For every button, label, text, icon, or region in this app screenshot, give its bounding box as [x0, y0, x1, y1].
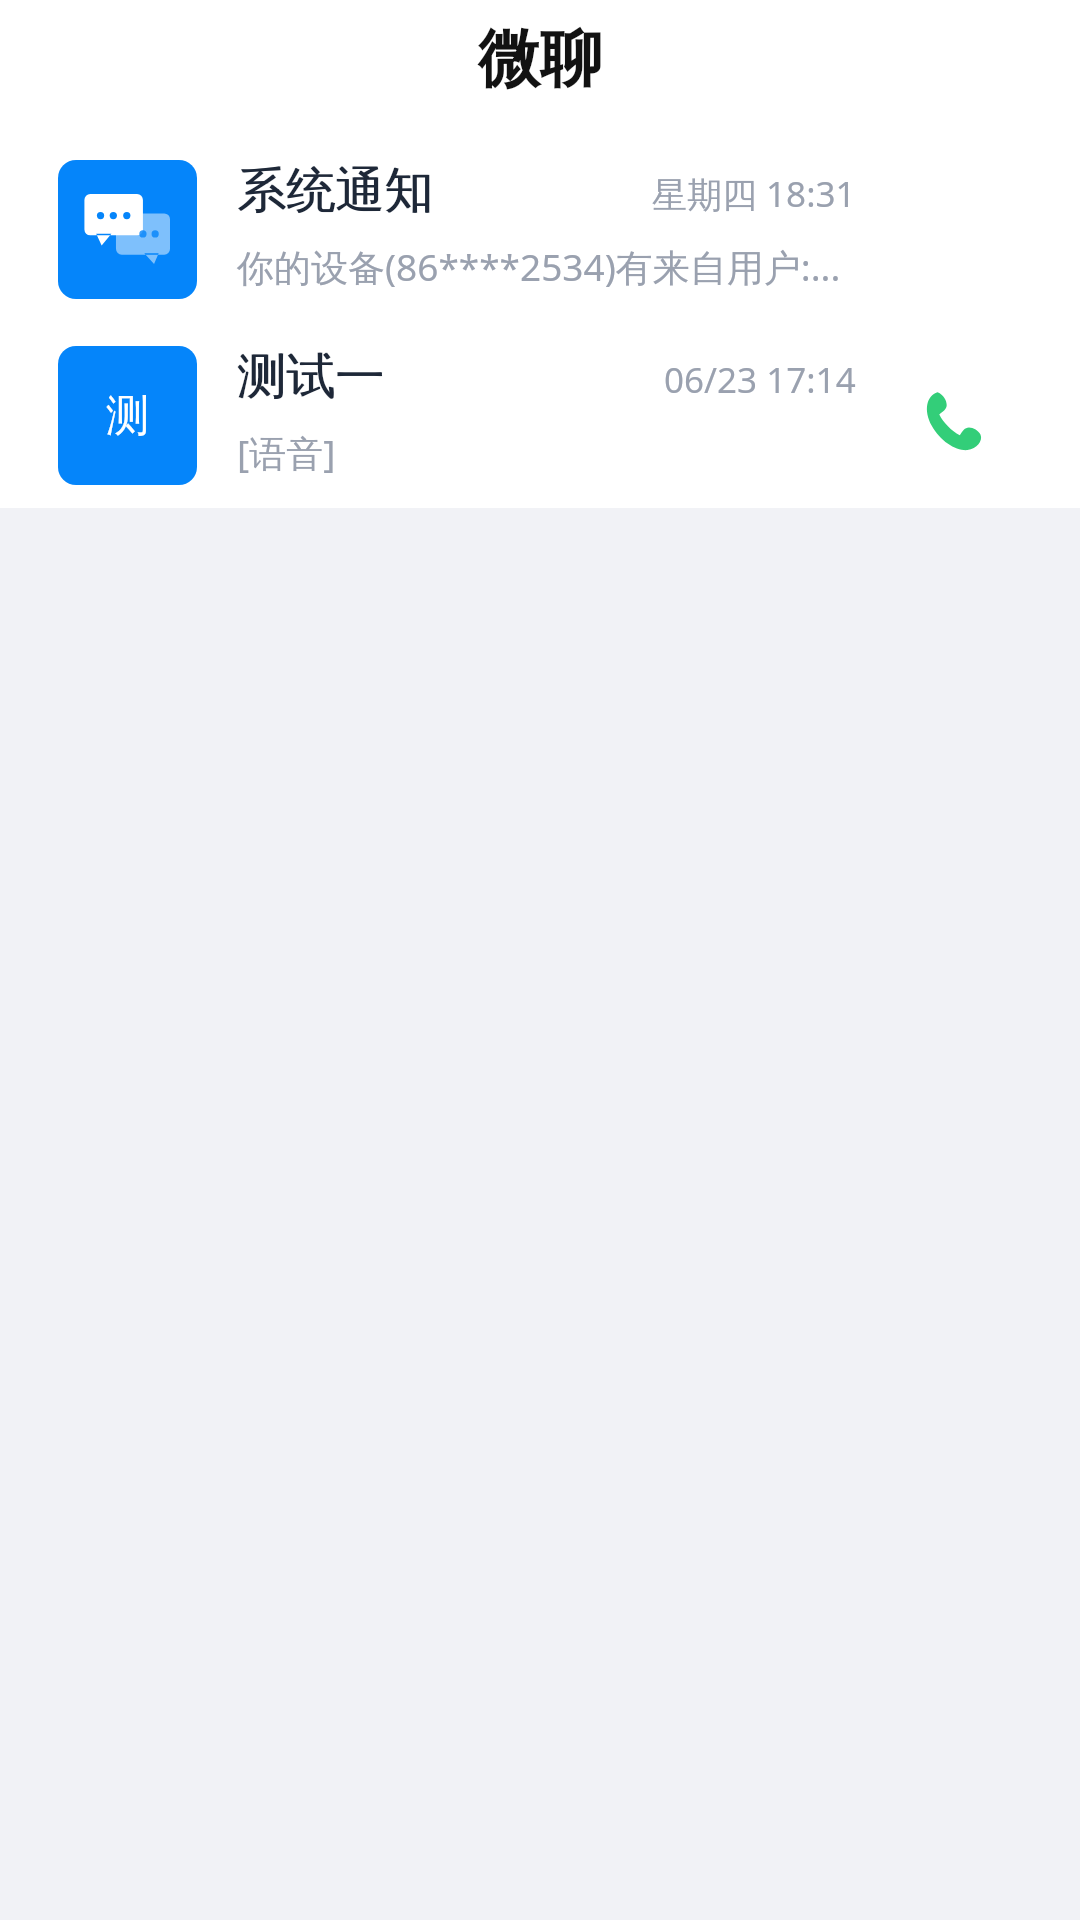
staticText: 测 — [106, 389, 149, 443]
staticText: 06/23 17:14 — [664, 356, 856, 404]
staticText: [语音] — [237, 427, 877, 478]
staticText: 系统通知 — [238, 160, 434, 222]
staticText: 微聊 — [478, 20, 602, 98]
staticText: 你的设备(86****2534)有来自用户:... — [237, 241, 877, 292]
staticText: 星期四 18:31 — [652, 170, 856, 218]
button[interactable]: 测 — [0, 322, 1080, 508]
staticText: 测试一 — [237, 346, 384, 408]
staticText: 测试一 — [238, 346, 385, 408]
staticText: 系统通知 — [237, 160, 433, 222]
button[interactable]: Call — [914, 375, 994, 455]
button[interactable]: 系统通知 — [0, 136, 1080, 322]
